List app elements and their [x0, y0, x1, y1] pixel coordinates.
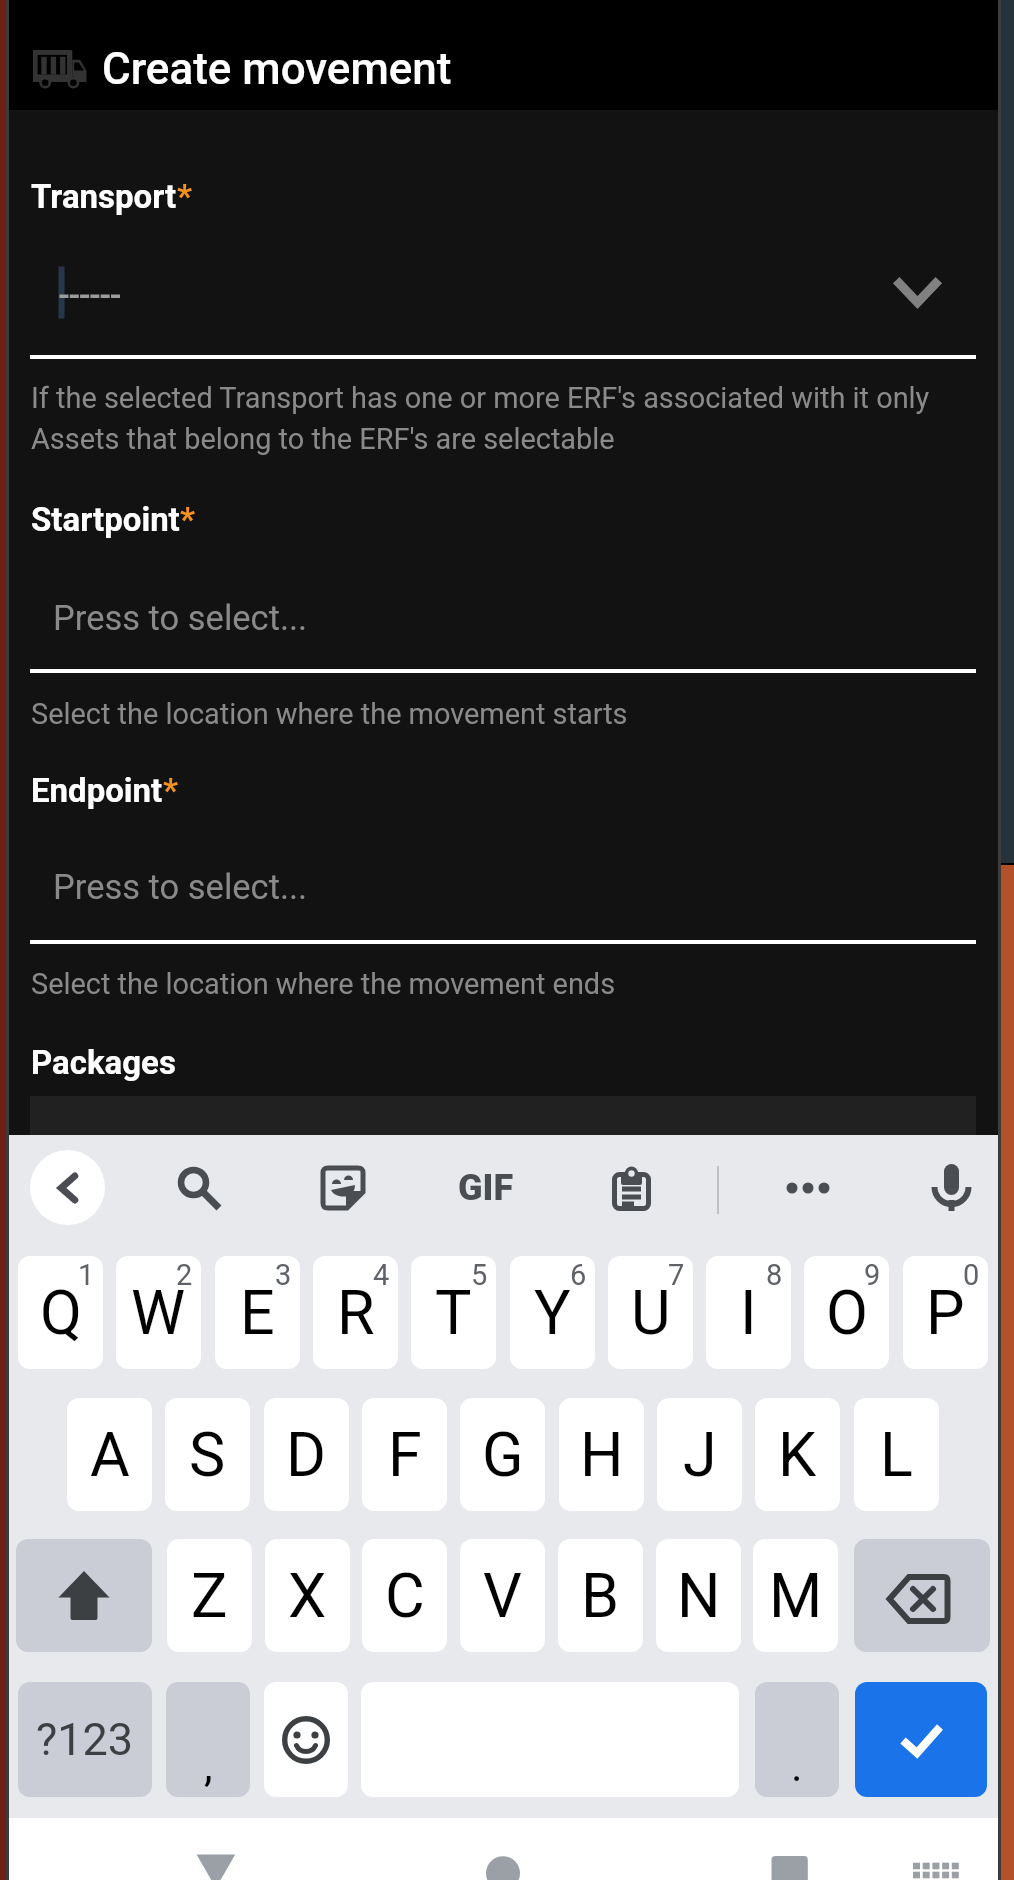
button[interactable]: L	[854, 1398, 939, 1511]
staticText: N	[677, 1560, 721, 1631]
staticText: Press to select...	[53, 598, 308, 638]
staticText: If the selected Transport has one or mor…	[31, 381, 930, 415]
button[interactable]: V	[460, 1539, 545, 1652]
staticText: Y	[534, 1277, 571, 1348]
button[interactable]: B	[558, 1539, 643, 1652]
staticText: E	[240, 1277, 275, 1348]
button[interactable]: Q	[18, 1256, 103, 1369]
button[interactable]: Press to select...	[0, 563, 1014, 659]
button[interactable]: G	[460, 1398, 545, 1511]
staticText: R	[337, 1277, 375, 1348]
button[interactable]: Voice input	[914, 1150, 989, 1225]
button[interactable]: Press to select...	[0, 832, 1014, 928]
staticText: X	[288, 1560, 327, 1631]
button[interactable]: .	[755, 1682, 839, 1797]
staticText: K	[778, 1419, 817, 1490]
staticText: Assets that belong to the ERF's are sele…	[31, 422, 615, 456]
staticText: J	[683, 1419, 717, 1490]
staticText: Create movement	[102, 43, 452, 95]
button[interactable]: Back	[30, 1150, 105, 1225]
button[interactable]: Enter	[855, 1682, 987, 1797]
staticText: L	[880, 1419, 913, 1490]
staticText: GIF	[458, 1167, 514, 1209]
staticText: Select the location where the movement e…	[31, 967, 616, 1001]
staticText: P	[926, 1277, 965, 1348]
staticText: O	[826, 1277, 868, 1348]
staticText: Z	[191, 1560, 228, 1631]
staticText: Startpoint	[31, 500, 180, 539]
staticText: V	[483, 1560, 522, 1631]
staticText: Q	[40, 1277, 82, 1348]
staticText: 4	[373, 1258, 390, 1292]
staticText: 2	[176, 1258, 193, 1292]
staticText: C	[385, 1560, 425, 1631]
staticText: 0	[963, 1258, 980, 1292]
button[interactable]: U	[608, 1256, 693, 1369]
button[interactable]: T	[411, 1256, 496, 1369]
button[interactable]: X	[265, 1539, 350, 1652]
staticText: *	[163, 771, 178, 810]
button[interactable]: D	[264, 1398, 349, 1511]
staticText: Packages	[31, 1043, 176, 1082]
staticText: Transport	[31, 177, 177, 216]
staticText: 9	[864, 1258, 881, 1292]
staticText: G	[482, 1419, 524, 1490]
staticText: 7	[668, 1258, 685, 1292]
button[interactable]: C	[362, 1539, 447, 1652]
button[interactable]: A	[67, 1398, 152, 1511]
button[interactable]: Backspace	[854, 1539, 990, 1652]
staticText: .	[791, 1740, 803, 1792]
staticText: M	[769, 1560, 823, 1631]
button[interactable]: Open dropdown	[0, 265, 1014, 355]
button[interactable]: Clipboard	[594, 1150, 669, 1225]
staticText: H	[580, 1419, 624, 1490]
button[interactable]: I	[706, 1256, 791, 1369]
staticText: I	[740, 1277, 757, 1348]
button[interactable]: F	[362, 1398, 447, 1511]
button[interactable]	[30, 1096, 976, 1141]
button[interactable]: E	[215, 1256, 300, 1369]
staticText: Press to select...	[53, 867, 308, 907]
staticText: 8	[766, 1258, 783, 1292]
staticText: W	[131, 1277, 186, 1348]
staticText: Select the location where the movement s…	[31, 697, 628, 731]
staticText: ?123	[36, 1713, 134, 1766]
button[interactable]: H	[559, 1398, 644, 1511]
button[interactable]: ?123	[18, 1682, 152, 1797]
staticText: U	[631, 1277, 671, 1348]
staticText: 5	[471, 1258, 488, 1292]
staticText: D	[286, 1419, 327, 1490]
button[interactable]: Emoji	[264, 1682, 348, 1797]
button[interactable]: K	[755, 1398, 840, 1511]
button[interactable]: ,	[166, 1682, 250, 1797]
button[interactable]: Z	[167, 1539, 252, 1652]
button[interactable]: N	[656, 1539, 741, 1652]
staticText: A	[90, 1419, 130, 1490]
button[interactable]: Y	[510, 1256, 595, 1369]
staticText: F	[388, 1419, 422, 1490]
staticText: *	[180, 500, 195, 539]
button[interactable]: O	[804, 1256, 889, 1369]
button[interactable]: GIF	[448, 1150, 523, 1225]
staticText: S	[189, 1419, 226, 1490]
staticText: 3	[275, 1258, 292, 1292]
button[interactable]: S	[165, 1398, 250, 1511]
button[interactable]: Shift	[16, 1539, 152, 1652]
button[interactable]: W	[116, 1256, 201, 1369]
staticText: 6	[570, 1258, 587, 1292]
staticText: ,	[204, 1740, 213, 1792]
button[interactable]: M	[753, 1539, 838, 1652]
staticText: Endpoint	[31, 771, 163, 810]
staticText: T	[435, 1277, 472, 1348]
button[interactable]: R	[313, 1256, 398, 1369]
staticText: *	[177, 177, 192, 216]
button[interactable]: J	[657, 1398, 742, 1511]
button[interactable]: P	[903, 1256, 988, 1369]
button[interactable]: Open dropdown	[869, 247, 965, 337]
button[interactable]: Search	[161, 1150, 236, 1225]
staticText: 1	[78, 1258, 95, 1292]
staticText: B	[581, 1560, 620, 1631]
button[interactable]: Stickers	[305, 1150, 380, 1225]
button[interactable]: More options	[770, 1150, 845, 1225]
